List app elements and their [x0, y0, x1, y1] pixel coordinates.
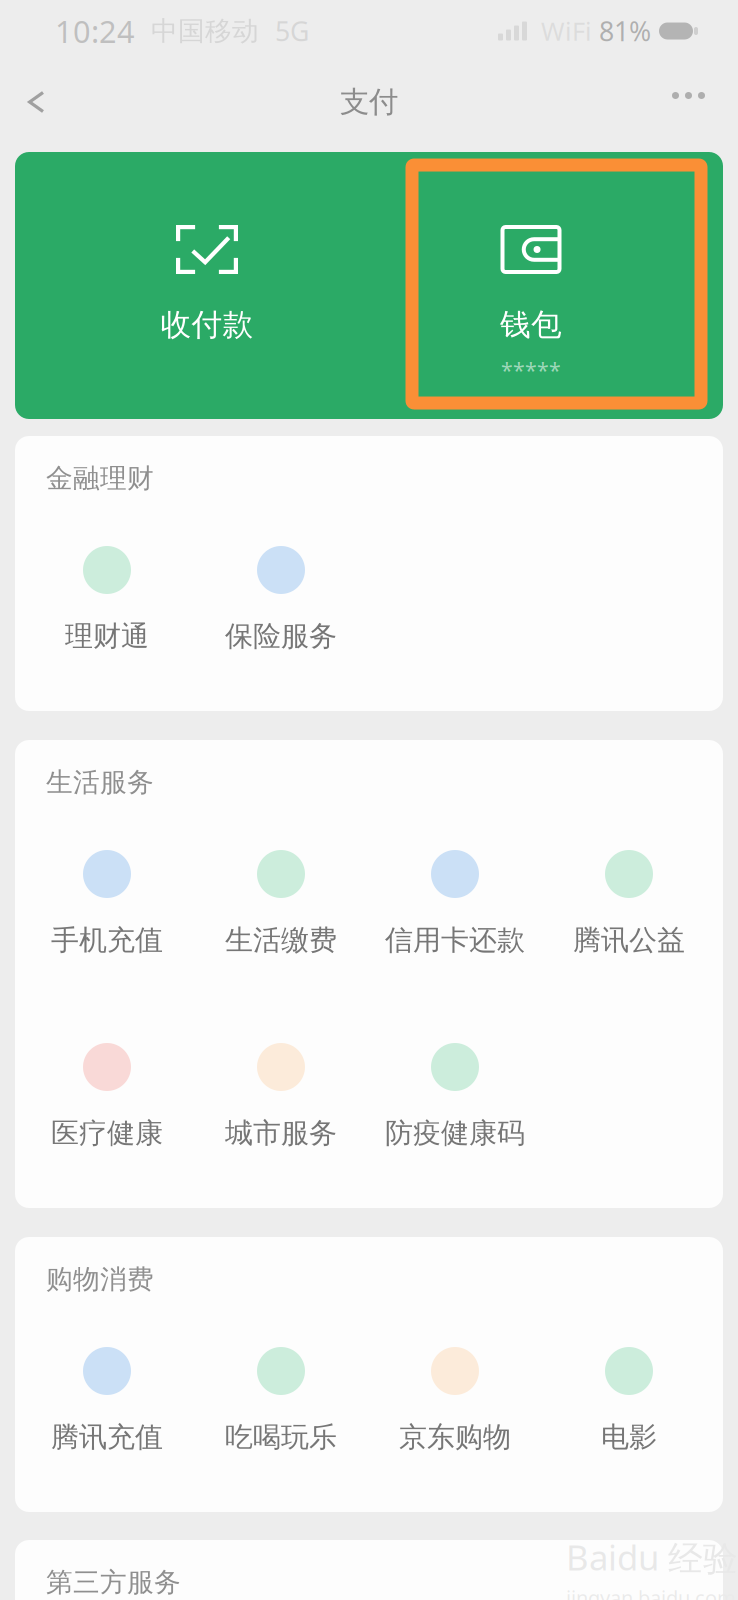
- button[interactable]: 医疗健康: [20, 1013, 194, 1206]
- staticText: 信用卡还款: [385, 923, 525, 957]
- button[interactable]: 城市服务: [194, 1013, 368, 1206]
- staticText: WiFi: [527, 14, 599, 48]
- button[interactable]: 生活缴费: [194, 820, 368, 1013]
- staticText: 5G: [275, 13, 309, 49]
- button[interactable]: 保险服务: [194, 516, 368, 709]
- staticText: 保险服务: [225, 619, 337, 653]
- button[interactable]: 吃喝玩乐: [194, 1317, 368, 1510]
- staticText: 收付款: [160, 306, 253, 344]
- staticText: 生活缴费: [225, 923, 337, 957]
- button[interactable]: 信用卡还款: [368, 820, 542, 1013]
- button[interactable]: 防疫健康码: [368, 1013, 542, 1206]
- staticText: 钱包: [500, 306, 562, 344]
- staticText: jingyan.baidu.com: [566, 1584, 736, 1600]
- staticText: 腾讯公益: [573, 923, 685, 957]
- button[interactable]: 手机充值: [20, 820, 194, 1013]
- button[interactable]: 腾讯公益: [542, 820, 716, 1013]
- staticText: 81%: [599, 13, 651, 49]
- button[interactable]: 电影: [542, 1317, 716, 1510]
- staticText: 医疗健康: [51, 1116, 163, 1150]
- staticText: 防疫健康码: [385, 1116, 525, 1150]
- button[interactable]: 理财通: [20, 516, 194, 709]
- staticText: 城市服务: [225, 1116, 337, 1150]
- staticText: 吃喝玩乐: [225, 1420, 337, 1454]
- staticText: *****: [501, 356, 561, 384]
- staticText: 10:24: [55, 11, 135, 51]
- staticText: 京东购物: [399, 1420, 511, 1454]
- button[interactable]: 京东购物: [368, 1317, 542, 1510]
- staticText: 电影: [601, 1420, 657, 1454]
- button[interactable]: 收付款: [45, 152, 369, 419]
- staticText: 中国移动: [135, 15, 275, 47]
- staticText: 腾讯充值: [51, 1420, 163, 1454]
- staticText: 支付: [340, 84, 398, 120]
- button[interactable]: Back: [12, 70, 61, 133]
- staticText: Baidu 经验: [566, 1534, 738, 1580]
- button[interactable]: 腾讯充值: [20, 1317, 194, 1510]
- staticText: 购物消费: [46, 1263, 154, 1296]
- staticText: 金融理财: [46, 462, 154, 495]
- button[interactable]: More: [656, 72, 726, 132]
- staticText: 理财通: [65, 619, 149, 653]
- staticText: 生活服务: [46, 766, 154, 799]
- staticText: 第三方服务: [46, 1566, 181, 1599]
- staticText: 手机充值: [51, 923, 163, 957]
- button[interactable]: 钱包: [369, 152, 693, 419]
